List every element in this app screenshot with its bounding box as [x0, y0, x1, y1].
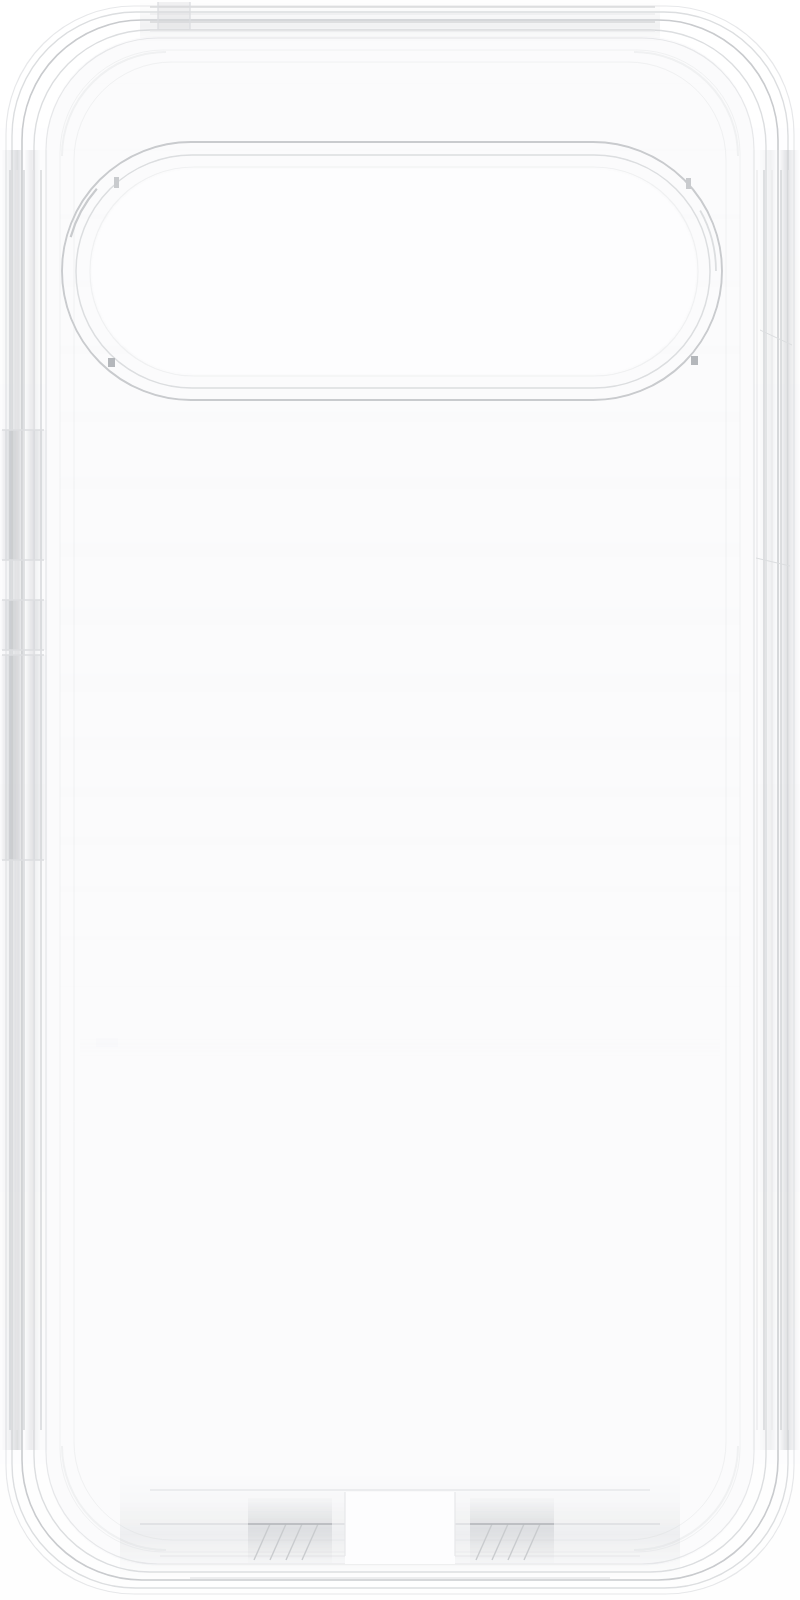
other: Clear protective phone case, back view [0, 0, 800, 1600]
